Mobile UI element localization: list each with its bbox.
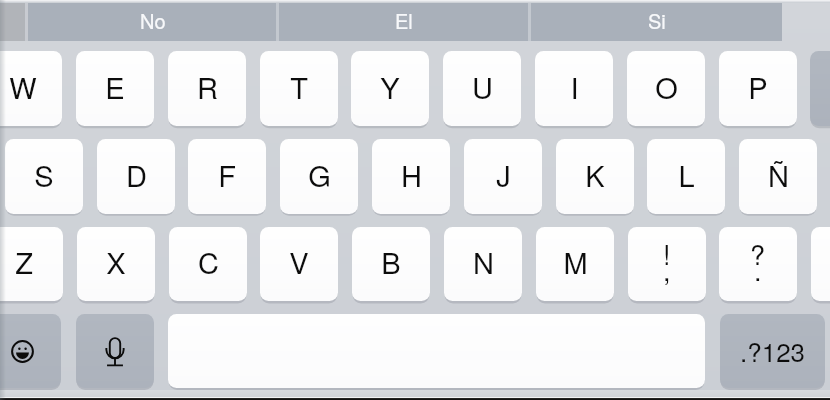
staticText: I [570, 66, 579, 108]
button[interactable]: O [627, 51, 705, 126]
staticText: F [218, 154, 236, 196]
staticText: M [563, 241, 588, 283]
button[interactable]: Si [532, 2, 782, 41]
button[interactable]: Y [351, 51, 429, 126]
staticText: Z [15, 241, 33, 283]
staticText: J [496, 154, 511, 196]
staticText: No [140, 6, 166, 35]
staticText: Si [648, 6, 666, 35]
button[interactable]: E [76, 51, 154, 126]
button[interactable]: P [719, 51, 797, 126]
button[interactable]: Ñ [739, 139, 817, 214]
staticText: H [401, 154, 422, 196]
staticText: B [381, 241, 401, 283]
button[interactable]: S [5, 139, 83, 214]
button[interactable]: C [169, 227, 247, 301]
staticText: E [105, 66, 125, 108]
button[interactable]: B [352, 227, 430, 301]
staticText: O [655, 66, 678, 108]
staticText: V [289, 241, 309, 283]
staticText: ? [750, 234, 766, 273]
button[interactable]: D [97, 139, 175, 214]
button[interactable]: Emoji [0, 314, 61, 388]
button[interactable]: Backspace [810, 51, 830, 126]
button[interactable]: J [464, 139, 542, 214]
staticText: L [678, 154, 695, 196]
staticText: ! [663, 234, 671, 273]
staticText: K [585, 154, 605, 196]
button[interactable]: R [168, 51, 246, 126]
button[interactable]: F [188, 139, 266, 214]
button[interactable]: Z [0, 227, 63, 301]
button[interactable]: T [260, 51, 338, 126]
button[interactable]: X [77, 227, 155, 301]
staticText: Ñ [768, 154, 789, 196]
button[interactable]: H [372, 139, 450, 214]
staticText: Y [380, 66, 400, 108]
button[interactable]: No [29, 2, 276, 41]
button[interactable]: El [280, 2, 528, 41]
staticText: C [198, 241, 219, 283]
button[interactable]: Suggestion [0, 2, 26, 41]
button[interactable]: ? [719, 227, 797, 301]
button[interactable]: Return [811, 227, 830, 301]
staticText: P [748, 66, 768, 108]
button[interactable]: K [556, 139, 634, 214]
button[interactable]: .?123 [720, 314, 825, 388]
button[interactable]: I [535, 51, 613, 126]
button[interactable]: V [260, 227, 338, 301]
staticText: W [9, 66, 37, 108]
staticText: R [197, 66, 218, 108]
button[interactable]: N [444, 227, 522, 301]
staticText: S [34, 154, 54, 196]
staticText: , [663, 250, 671, 289]
staticText: U [472, 66, 493, 108]
staticText: .?123 [740, 332, 806, 369]
button[interactable]: M [536, 227, 614, 301]
staticText: G [308, 154, 331, 196]
staticText: El [395, 6, 413, 35]
button[interactable]: Dictation [76, 314, 154, 388]
staticText: X [106, 241, 126, 283]
staticText: D [126, 154, 147, 196]
button[interactable]: ! [628, 227, 706, 301]
button[interactable]: U [443, 51, 521, 126]
button[interactable]: W [0, 51, 62, 126]
button[interactable]: G [280, 139, 358, 214]
staticText: T [290, 66, 308, 108]
staticText: . [754, 250, 762, 289]
staticText: N [473, 241, 494, 283]
button[interactable]: L [647, 139, 725, 214]
